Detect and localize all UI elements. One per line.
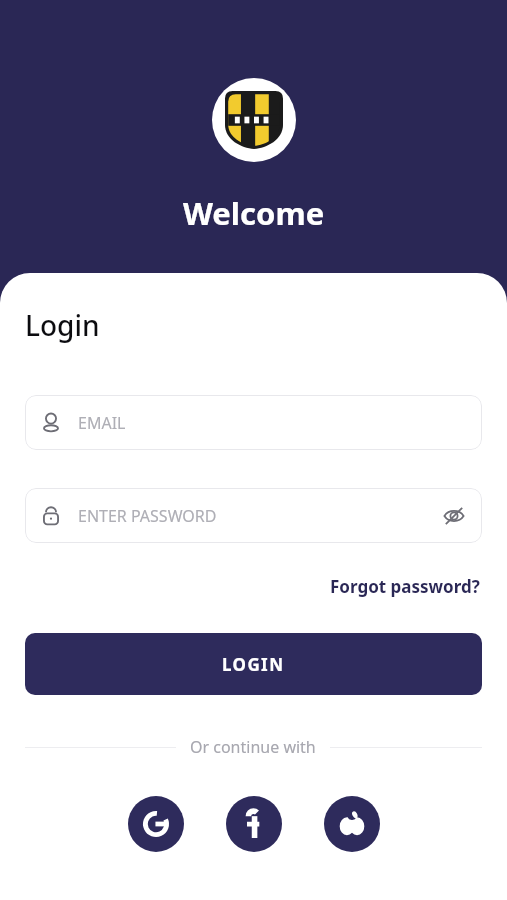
- button[interactable]: EMAIL: [25, 395, 482, 450]
- staticText: Login: [25, 306, 100, 344]
- button[interactable]: Sign in with Apple: [324, 796, 380, 852]
- button[interactable]: LOGIN: [25, 633, 482, 695]
- button[interactable]: Forgot password?: [328, 573, 482, 600]
- button[interactable]: Show password: [439, 501, 469, 531]
- staticText: ENTER PASSWORD: [78, 505, 439, 527]
- staticText: EMAIL: [78, 412, 126, 434]
- staticText: Or continue with: [190, 736, 316, 758]
- staticText: Forgot password?: [330, 575, 480, 598]
- button[interactable]: ENTER PASSWORD: [25, 488, 482, 543]
- staticText: Welcome: [183, 192, 325, 234]
- button[interactable]: Sign in with Google: [128, 796, 184, 852]
- staticText: LOGIN: [222, 653, 285, 676]
- button[interactable]: Sign in with Facebook: [226, 796, 282, 852]
